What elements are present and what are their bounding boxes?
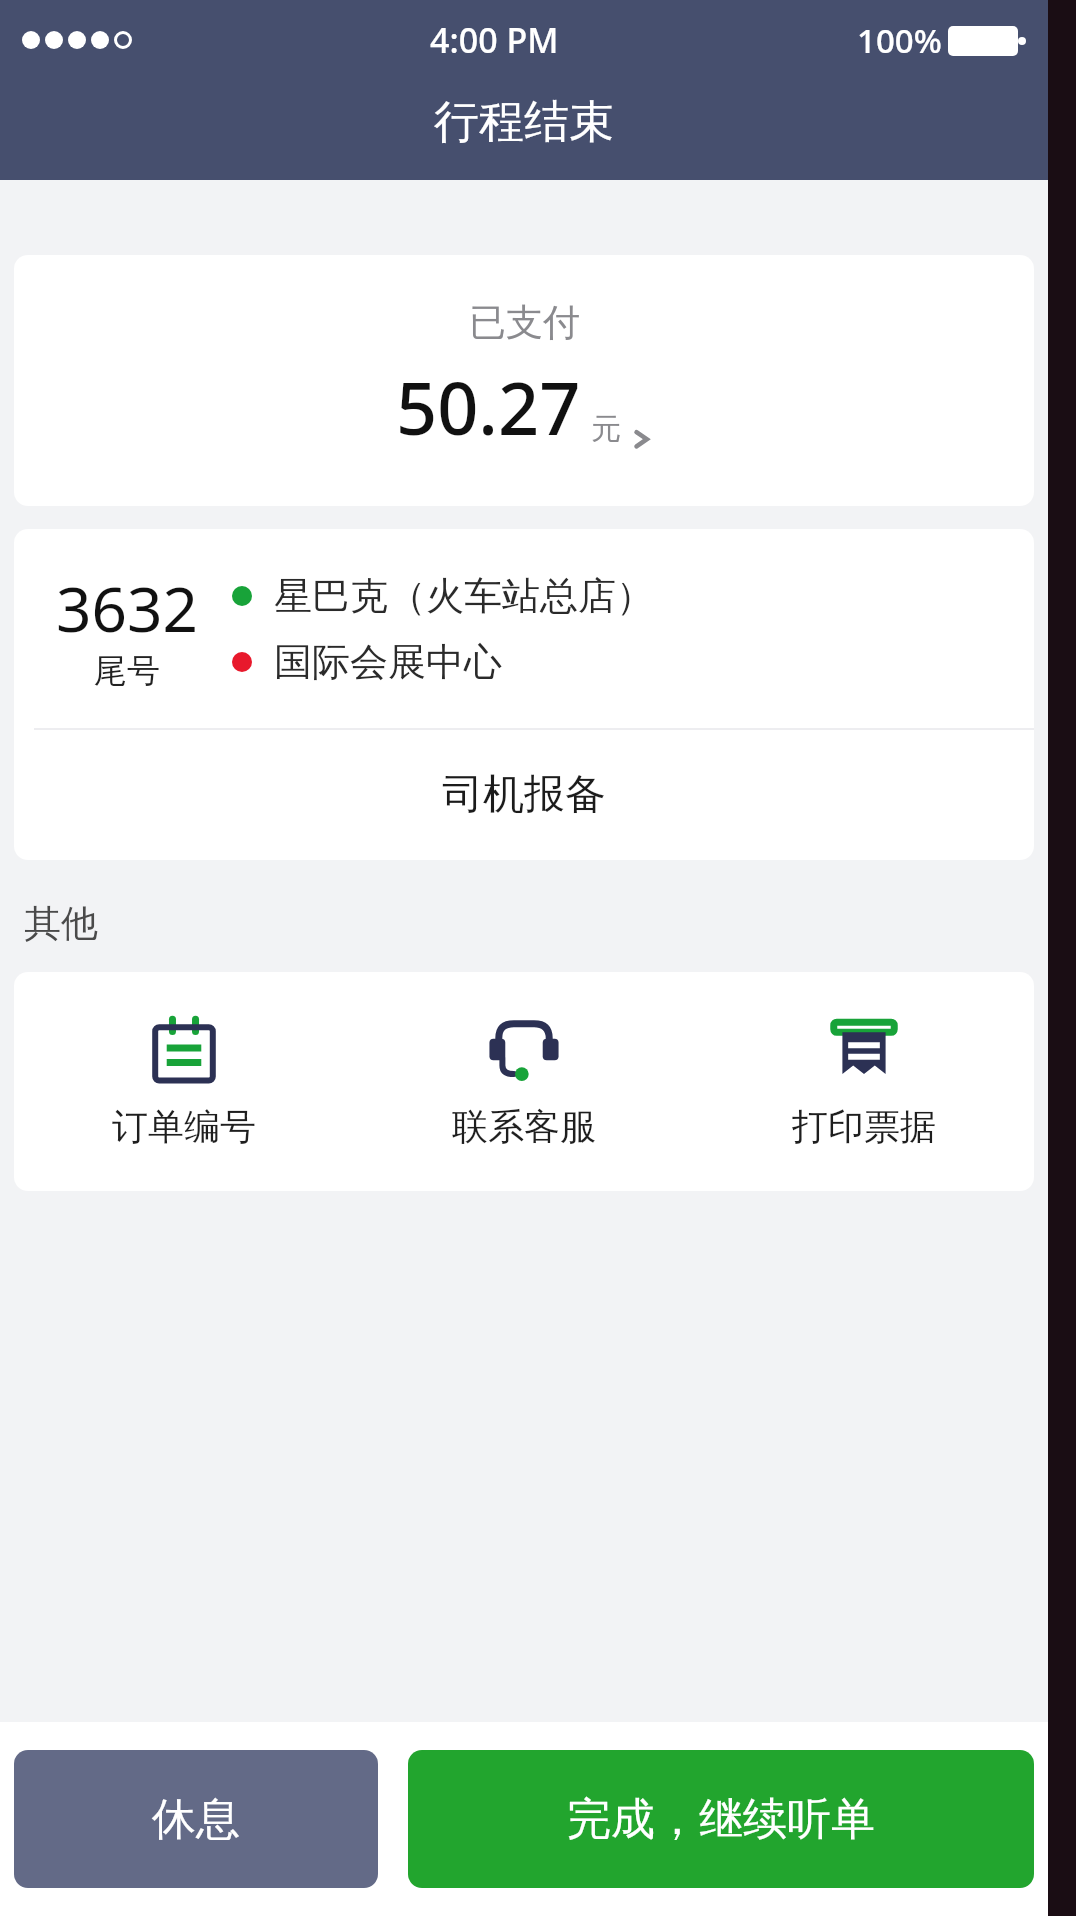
staticText: 3632 [56,566,198,650]
staticText: 其他 [24,900,98,947]
staticText: 尾号 [94,650,160,692]
button[interactable]: 完成，继续听单 [408,1750,1034,1888]
staticText: 4:00 PM [430,17,559,63]
staticText: 已支付 [469,299,580,346]
staticText: 司机报备 [442,769,606,821]
staticText: 订单编号 [112,1104,256,1149]
button[interactable]: 司机报备 [14,730,1034,860]
staticText: 100% [857,18,942,63]
button[interactable]: 联系客服 [354,972,694,1191]
button[interactable]: 已支付 [14,255,1034,506]
staticText: 星巴克（火车站总店） [274,572,654,620]
button[interactable]: 订单编号 [14,972,354,1191]
staticText: 休息 [152,1792,240,1847]
staticText: 打印票据 [792,1104,936,1149]
staticText: 元 [591,410,621,448]
button[interactable]: 打印票据 [694,972,1034,1191]
staticText: 联系客服 [452,1104,596,1149]
staticText: 国际会展中心 [274,638,502,686]
staticText: 行程结束 [434,94,614,151]
button[interactable]: 休息 [14,1750,378,1888]
staticText: 完成，继续听单 [567,1792,875,1847]
staticText: 50.27 [396,358,581,456]
